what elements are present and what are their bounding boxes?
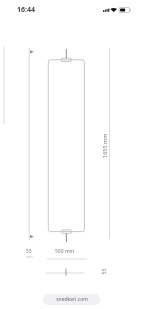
staticText: 53 xyxy=(26,248,32,255)
staticText: snedkeri.com xyxy=(56,296,88,303)
staticText: 1655 mm xyxy=(101,133,108,158)
staticText: 53 xyxy=(100,268,107,274)
staticText: mm xyxy=(26,254,33,259)
button[interactable]: snedkeri.com xyxy=(43,294,100,305)
staticText: 16:44 xyxy=(17,5,35,15)
staticText: 500 mm xyxy=(55,248,75,255)
